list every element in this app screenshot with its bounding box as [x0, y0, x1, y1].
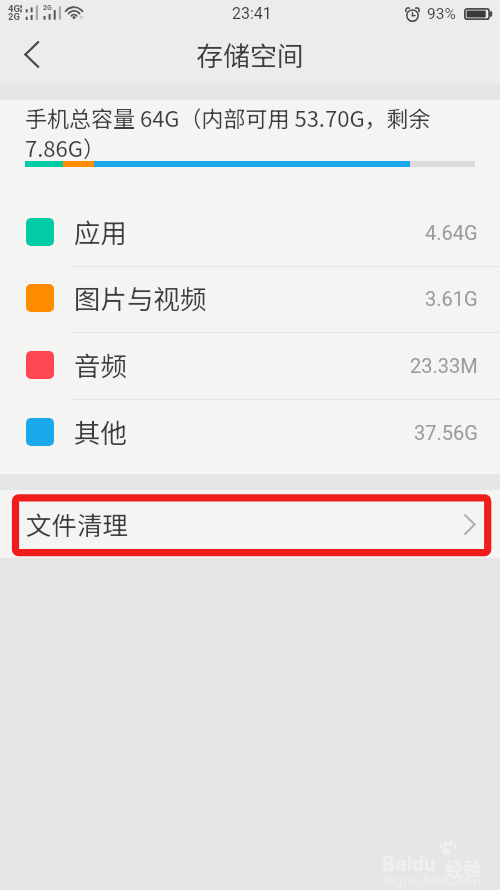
- other: Mobile signal and Wi-Fi status: [0, 3, 90, 29]
- button[interactable]: 图片与视频: [0, 264, 500, 331]
- staticText: 2G: [43, 4, 52, 12]
- staticText: 23:41: [232, 4, 272, 23]
- button[interactable]: 音频: [0, 331, 500, 398]
- button[interactable]: 应用: [0, 198, 500, 265]
- staticText: 4.64G: [425, 221, 478, 244]
- other: Alarm set: [405, 6, 420, 22]
- staticText: 4G: [8, 3, 20, 14]
- staticText: 应用: [74, 212, 127, 250]
- staticText: 文件清理: [26, 505, 129, 542]
- staticText: 23.33M: [410, 354, 478, 377]
- staticText: 手机总容量 64G（内部可用 53.70G，剩余 7.86G）: [25, 101, 457, 164]
- button[interactable]: Back: [0, 30, 54, 83]
- staticText: 其他: [74, 412, 127, 450]
- button[interactable]: 其他: [0, 398, 500, 465]
- other: Battery 93 percent: [464, 8, 493, 20]
- staticText: 2G: [8, 11, 20, 22]
- staticText: 93%: [427, 5, 456, 23]
- staticText: 音频: [74, 345, 127, 383]
- staticText: 图片与视频: [74, 278, 207, 316]
- staticText: 37.56G: [414, 421, 478, 444]
- button[interactable]: 文件清理: [0, 490, 500, 558]
- staticText: 存储空间: [196, 35, 304, 74]
- staticText: 经验: [445, 855, 481, 881]
- staticText: 3.61G: [425, 287, 478, 310]
- staticText: Baidu: [382, 852, 436, 877]
